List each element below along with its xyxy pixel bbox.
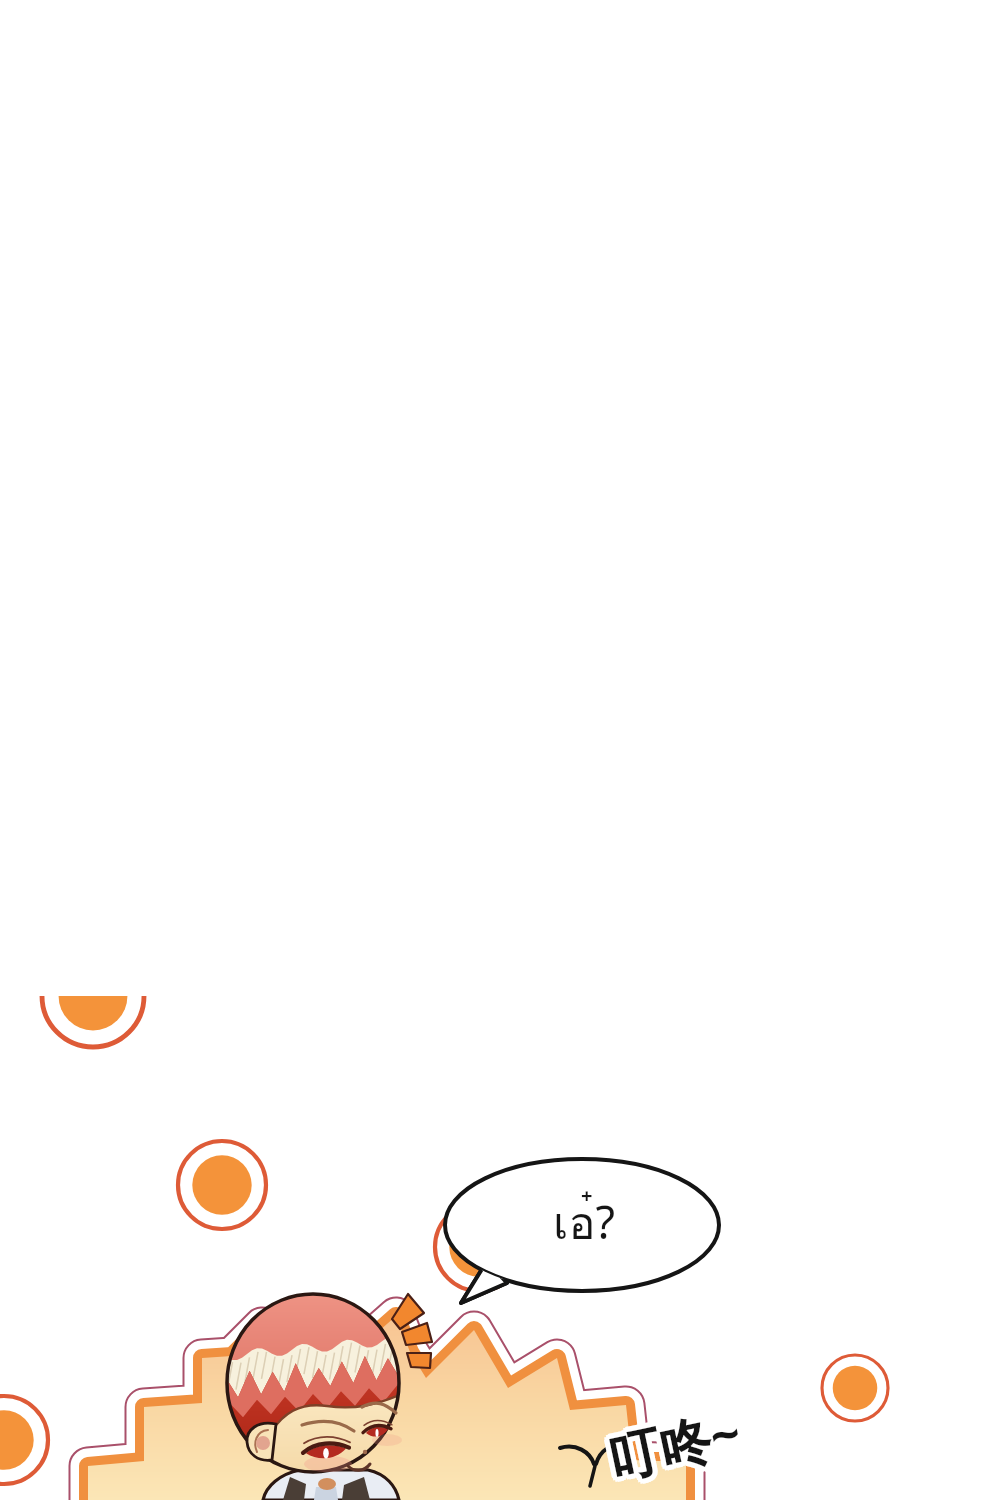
button[interactable]: Comic panel xyxy=(0,0,1000,1500)
